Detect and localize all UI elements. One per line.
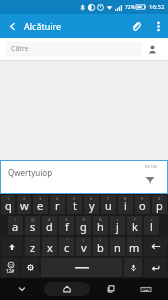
staticText: d bbox=[46, 219, 53, 234]
staticText: 0 bbox=[158, 196, 161, 201]
button[interactable]: Către bbox=[6, 42, 142, 56]
staticText: t bbox=[73, 198, 77, 213]
staticText: @ bbox=[31, 217, 35, 222]
button[interactable]: ( bbox=[76, 237, 91, 256]
button[interactable]: : bbox=[127, 237, 142, 256]
staticText: a bbox=[12, 219, 19, 234]
staticText: v bbox=[81, 240, 87, 255]
button[interactable]: ? bbox=[127, 216, 142, 235]
staticText: 72% bbox=[125, 4, 135, 11]
staticText: 10/160 bbox=[144, 164, 157, 169]
staticText: e bbox=[37, 198, 44, 213]
button[interactable]: & bbox=[93, 216, 108, 235]
staticText: - bbox=[49, 238, 51, 243]
staticText: s bbox=[30, 219, 36, 234]
staticText: g bbox=[80, 219, 87, 234]
staticText: f bbox=[65, 219, 69, 234]
button[interactable]: More options bbox=[148, 14, 168, 38]
staticText: k bbox=[132, 219, 138, 234]
staticText: c bbox=[64, 240, 70, 255]
staticText: x bbox=[47, 240, 53, 255]
staticText: Qwertyuiop bbox=[8, 167, 53, 178]
button[interactable]: ! bbox=[8, 216, 23, 235]
button[interactable]: + bbox=[110, 216, 125, 235]
staticText: 5 bbox=[73, 196, 76, 201]
button[interactable]: % bbox=[76, 216, 91, 235]
staticText: y bbox=[89, 198, 95, 213]
button[interactable]: Attach bbox=[124, 14, 148, 38]
staticText: ( bbox=[83, 238, 85, 243]
button[interactable]: " bbox=[59, 237, 74, 256]
staticText: w bbox=[20, 198, 29, 213]
staticText: u bbox=[105, 198, 112, 213]
button[interactable] bbox=[21, 258, 39, 277]
button[interactable]: 9 bbox=[135, 195, 150, 214]
button[interactable] bbox=[41, 258, 122, 277]
staticText: & bbox=[99, 217, 102, 222]
staticText: " bbox=[66, 238, 68, 243]
staticText: # bbox=[48, 217, 51, 222]
button[interactable]: ~ bbox=[25, 237, 40, 256]
button[interactable]: 12# bbox=[1, 258, 19, 277]
button[interactable]: Hide keyboard bbox=[9, 278, 35, 300]
button[interactable]: 7 bbox=[101, 195, 116, 214]
staticText: 1 bbox=[7, 196, 10, 201]
staticText: + bbox=[116, 217, 119, 222]
button[interactable]: 1 bbox=[1, 195, 15, 214]
staticText: ! bbox=[15, 217, 17, 222]
staticText: m bbox=[129, 240, 140, 255]
button[interactable]: Send bbox=[142, 171, 158, 187]
button[interactable]: Recent apps bbox=[98, 278, 124, 300]
staticText: b bbox=[97, 240, 104, 255]
staticText: : bbox=[134, 238, 136, 243]
button[interactable] bbox=[144, 258, 167, 277]
staticText: $ bbox=[65, 217, 68, 222]
button[interactable]: $ bbox=[59, 216, 74, 235]
button[interactable]: / bbox=[144, 216, 159, 235]
button[interactable]: Home bbox=[44, 282, 90, 296]
staticText: 12# bbox=[6, 268, 15, 274]
staticText: 6 bbox=[90, 196, 93, 201]
staticText: n bbox=[114, 240, 121, 255]
staticText: i bbox=[124, 198, 127, 213]
button[interactable]: 8 bbox=[118, 195, 133, 214]
button[interactable]: - bbox=[110, 237, 125, 256]
button[interactable]: Qwertyuiop bbox=[0, 160, 132, 194]
staticText: Către bbox=[11, 44, 29, 54]
button[interactable]: @ bbox=[25, 216, 40, 235]
button[interactable]: - bbox=[42, 237, 57, 256]
staticText: Alcătuire bbox=[24, 20, 62, 32]
button[interactable] bbox=[144, 237, 167, 256]
staticText: / bbox=[151, 217, 153, 222]
button[interactable]: 6 bbox=[84, 195, 99, 214]
staticText: ~ bbox=[31, 238, 34, 243]
staticText: ? bbox=[134, 217, 136, 222]
staticText: 2 bbox=[23, 196, 26, 201]
staticText: % bbox=[82, 217, 86, 222]
staticText: o bbox=[139, 198, 146, 213]
button[interactable] bbox=[1, 237, 23, 256]
staticText: p bbox=[156, 198, 163, 213]
staticText: ) bbox=[100, 238, 102, 243]
button[interactable]: # bbox=[42, 216, 57, 235]
staticText: q bbox=[5, 198, 12, 213]
button[interactable]: 0 bbox=[152, 195, 167, 214]
button[interactable]: 5 bbox=[67, 195, 82, 214]
button[interactable]: 4 bbox=[50, 195, 65, 214]
staticText: 9 bbox=[141, 196, 144, 201]
button[interactable]: Choose contact bbox=[142, 38, 162, 60]
staticText: 7 bbox=[107, 196, 110, 201]
staticText: 4 bbox=[56, 196, 59, 201]
staticText: - bbox=[117, 238, 119, 243]
button[interactable]: Back bbox=[0, 14, 24, 38]
staticText: l bbox=[150, 219, 153, 234]
button[interactable] bbox=[124, 258, 142, 277]
staticText: 8 bbox=[124, 196, 127, 201]
staticText: h bbox=[97, 219, 104, 234]
button[interactable]: 2 bbox=[17, 195, 31, 214]
button[interactable]: ) bbox=[93, 237, 108, 256]
button[interactable]: Switch keyboard bbox=[133, 278, 159, 300]
staticText: j bbox=[116, 219, 119, 234]
staticText: 3 bbox=[39, 196, 42, 201]
button[interactable]: 3 bbox=[33, 195, 48, 214]
